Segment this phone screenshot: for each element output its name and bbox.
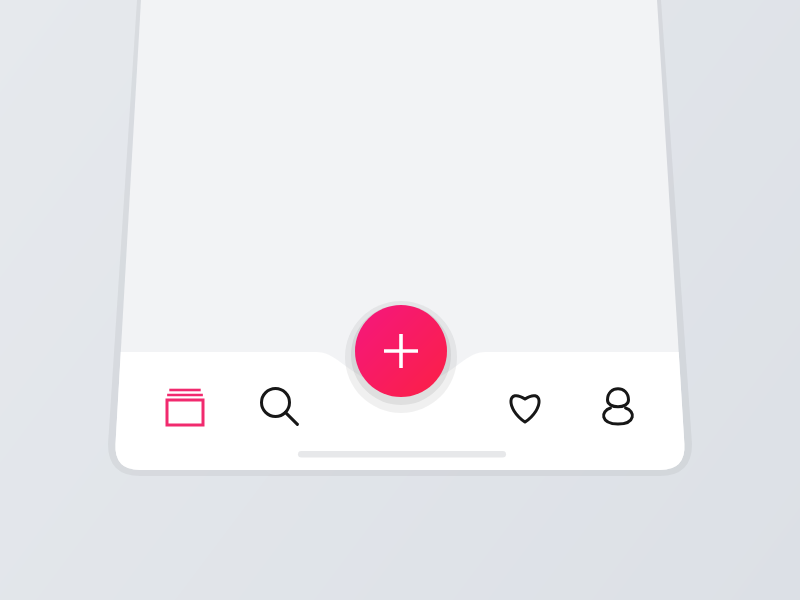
- button[interactable]: Search: [244, 377, 316, 439]
- button[interactable]: Favorites: [490, 377, 562, 439]
- button[interactable]: Profile: [583, 377, 655, 439]
- button[interactable]: Create new post: [355, 305, 447, 397]
- button[interactable]: Feed: [150, 377, 222, 439]
